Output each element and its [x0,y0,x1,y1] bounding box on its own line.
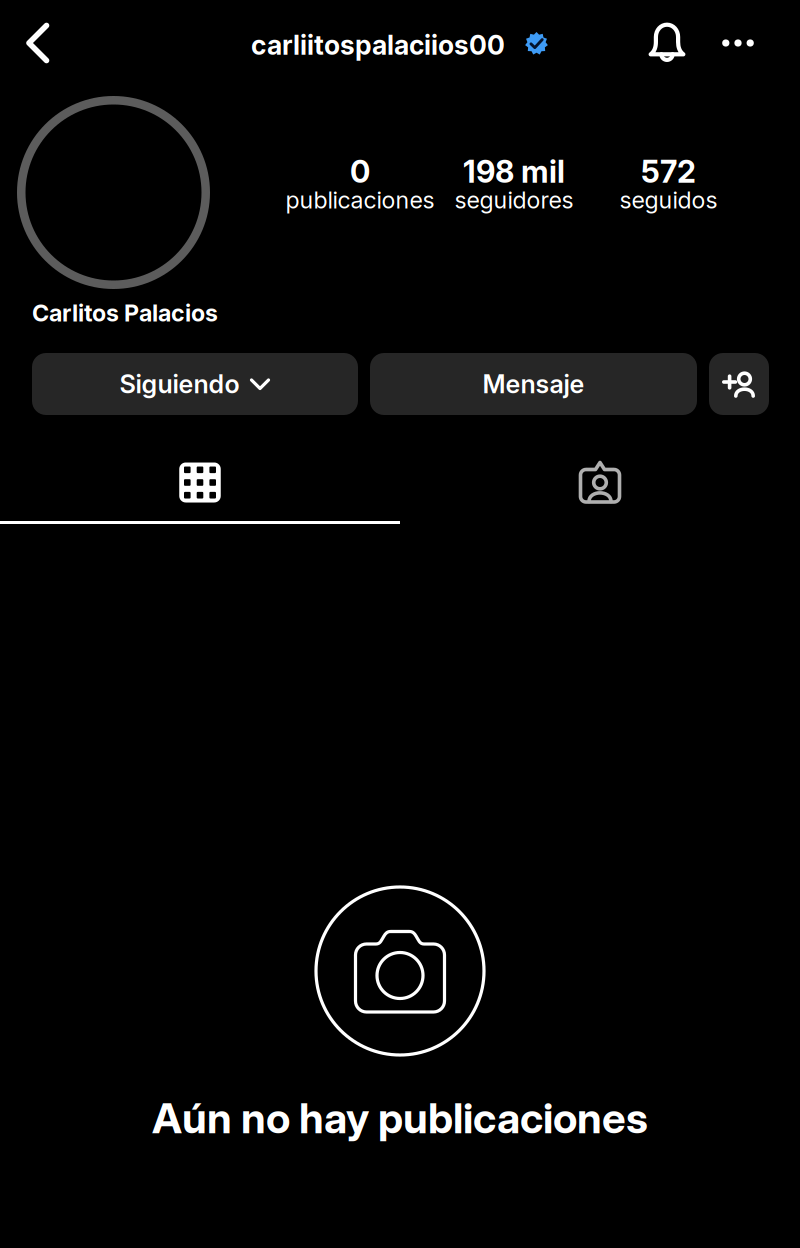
button[interactable]: 0 [283,159,437,211]
staticText: Mensaje [482,369,584,399]
button[interactable]: Siguiendo [32,353,358,415]
button[interactable]: Tagged photos [400,455,800,510]
button[interactable]: Back [14,21,62,65]
staticText: publicaciones [285,186,434,214]
staticText: 198 mil [463,153,565,190]
button[interactable]: 198 mil [437,159,591,211]
staticText: seguidos [619,186,717,214]
button[interactable]: Mensaje [370,353,697,415]
button[interactable]: Notifications [643,19,691,67]
button[interactable]: More options [722,27,754,59]
staticText: Aún no hay publicaciones [152,1093,648,1143]
staticText: Carlitos Palacios [32,299,218,327]
button[interactable]: Add person [709,353,769,415]
staticText: 572 [641,153,696,190]
button[interactable]: Profile photo [17,96,210,289]
staticText: Siguiendo [119,369,239,399]
staticText: seguidores [454,186,573,214]
staticText: carliitospalaciios00 [251,29,505,61]
button[interactable]: Posts grid [0,455,400,510]
button[interactable]: 572 [591,159,746,211]
staticText: 0 [350,153,370,190]
